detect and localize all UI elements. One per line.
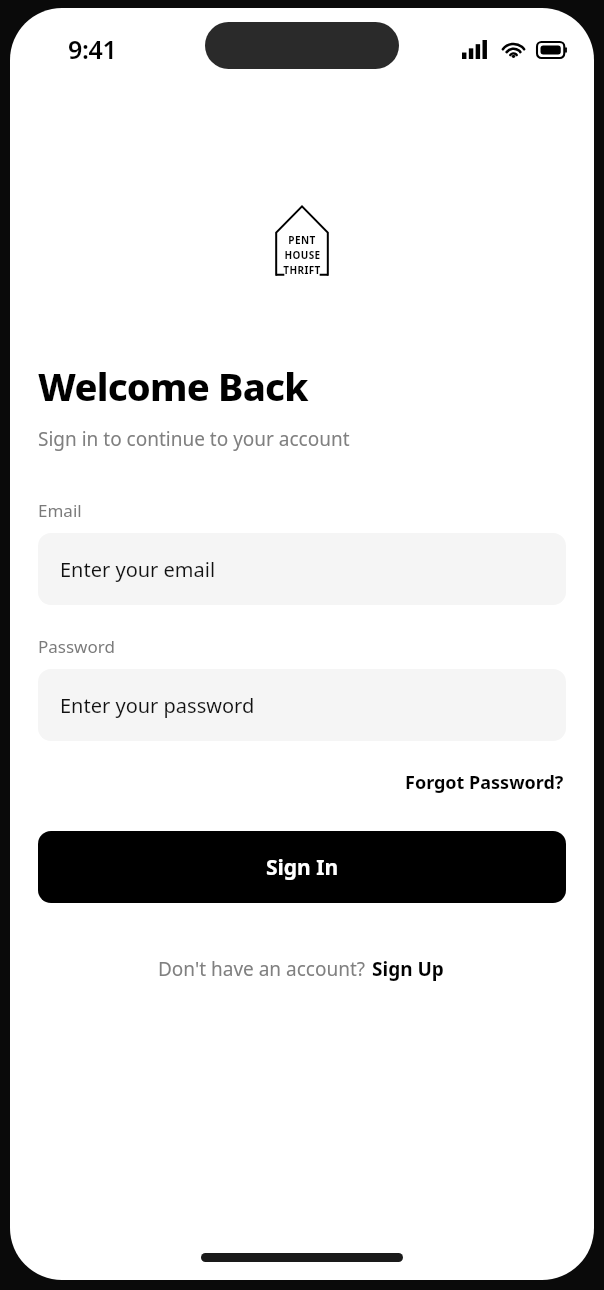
staticText: PENT bbox=[288, 233, 316, 247]
staticText: Password bbox=[38, 635, 115, 658]
button[interactable]: Enter your email bbox=[38, 533, 566, 605]
staticText: Sign Up bbox=[372, 956, 444, 982]
staticText: Forgot Password? bbox=[405, 770, 564, 795]
staticText: THRIFT bbox=[283, 263, 321, 277]
staticText: Enter your email bbox=[60, 556, 216, 583]
button[interactable]: Sign In bbox=[38, 831, 566, 903]
staticText: Sign In bbox=[266, 853, 339, 882]
other: Penthouse Thrift logo bbox=[273, 203, 331, 277]
staticText: HOUSE bbox=[284, 248, 321, 262]
button[interactable]: Enter your password bbox=[38, 669, 566, 741]
staticText: Welcome Back bbox=[38, 360, 308, 412]
staticText: 9:41 bbox=[68, 32, 117, 66]
staticText: Don't have an account? bbox=[158, 956, 370, 982]
staticText: Email bbox=[38, 499, 82, 522]
button[interactable]: Forgot Password? bbox=[403, 766, 566, 799]
staticText: Sign in to continue to your account bbox=[38, 426, 350, 452]
staticText: Enter your password bbox=[60, 692, 255, 719]
button[interactable]: Sign Up bbox=[370, 953, 446, 985]
